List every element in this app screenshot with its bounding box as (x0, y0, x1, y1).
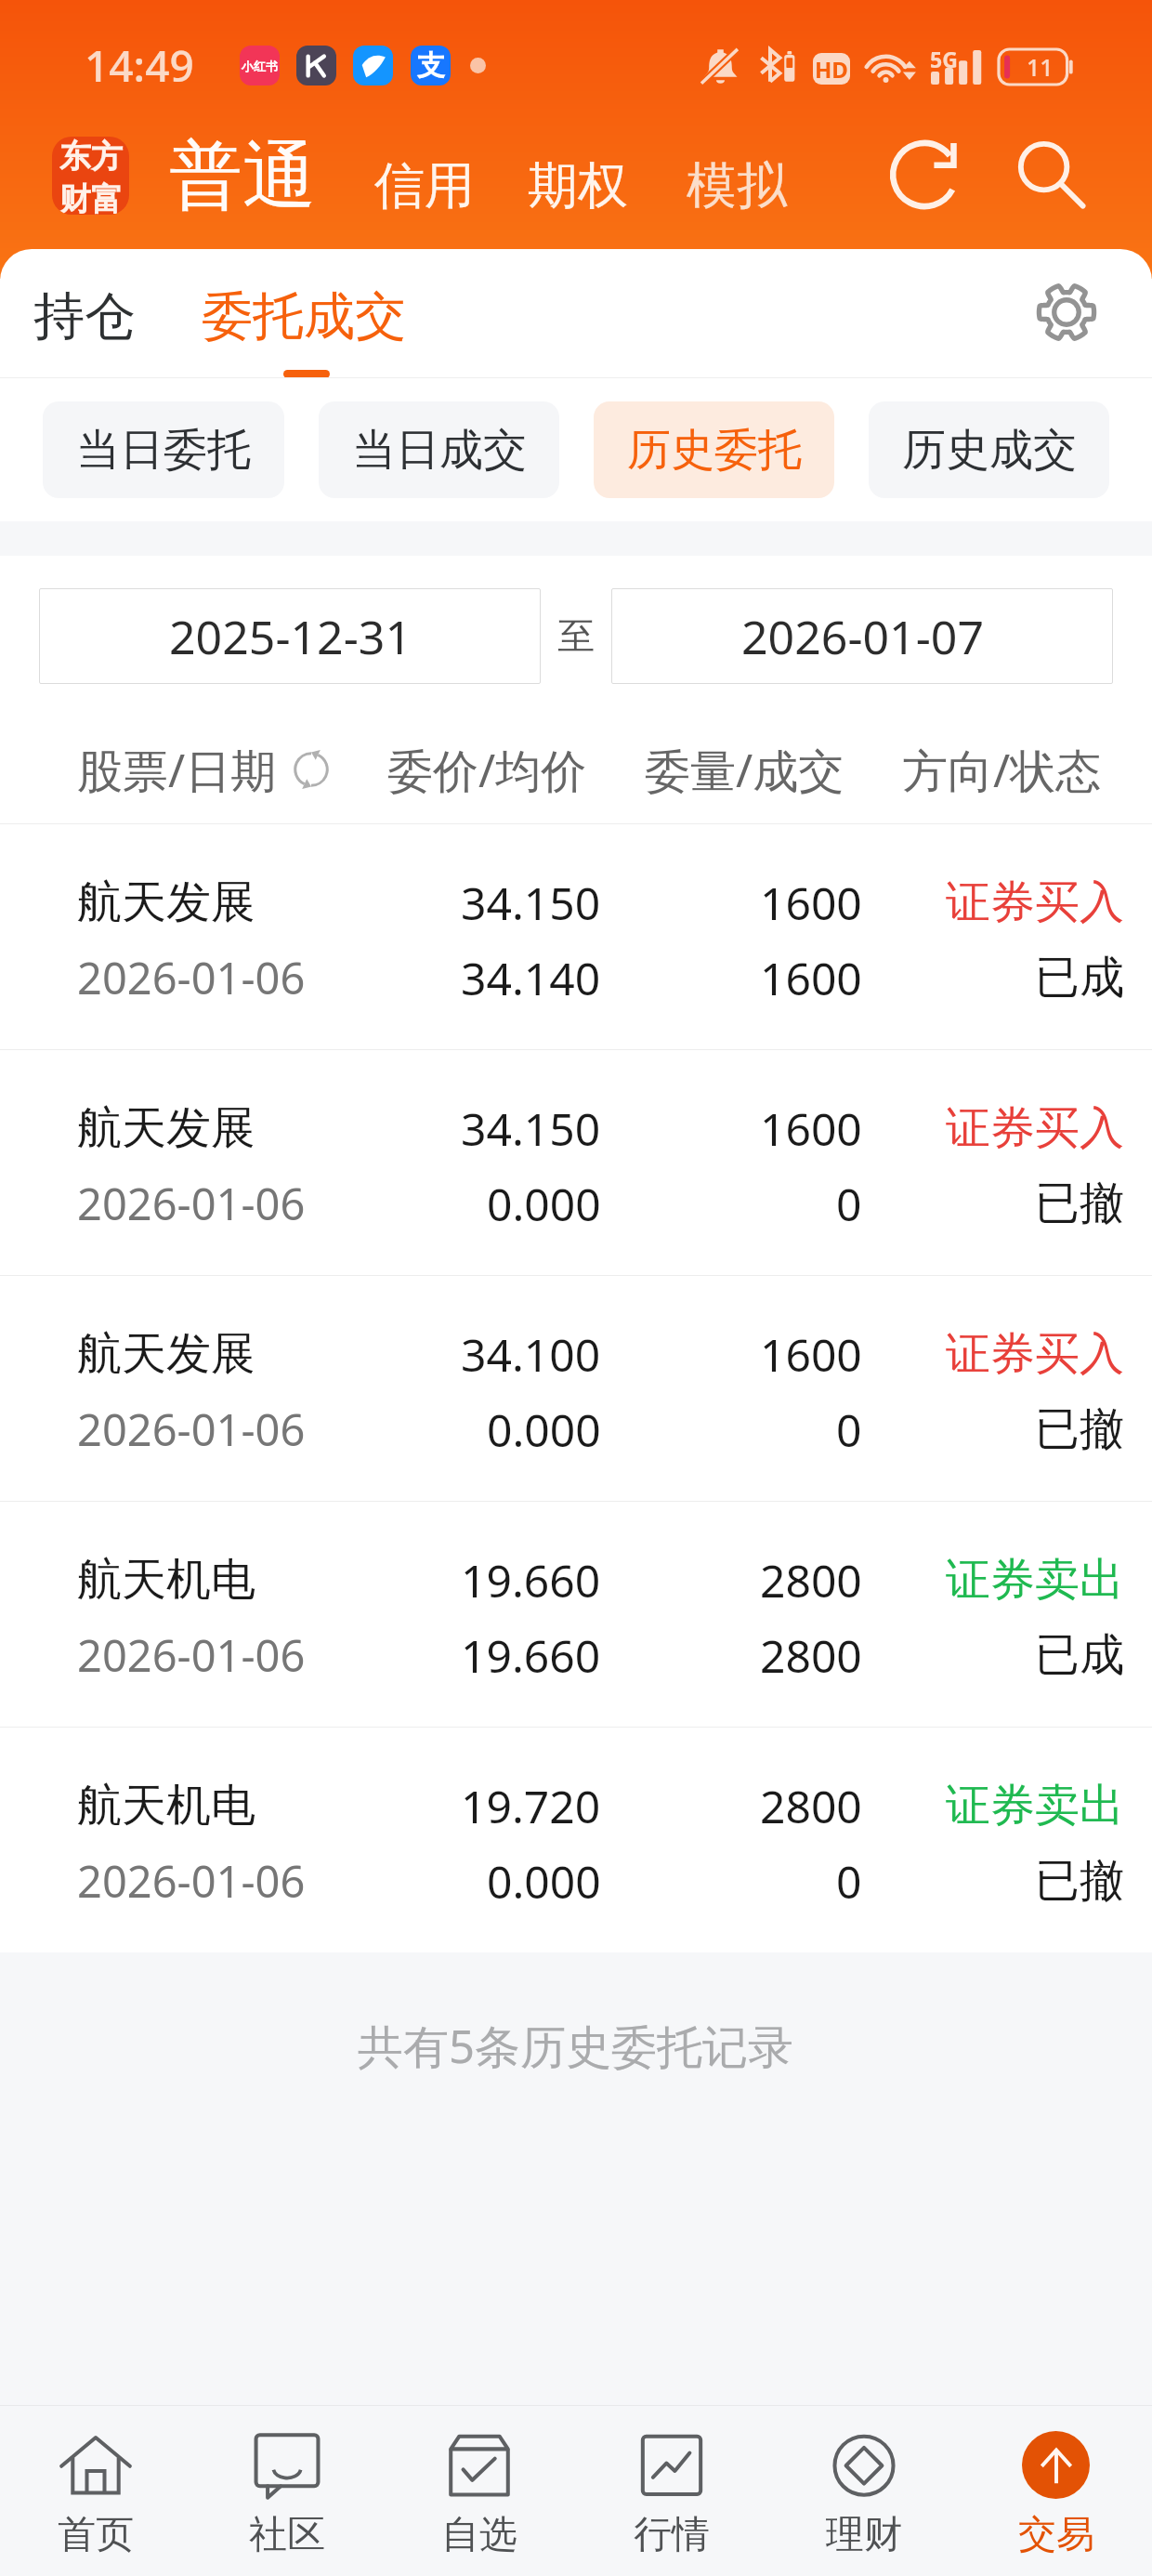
staticText: 19.660 (461, 1550, 601, 1610)
button[interactable]: 历史成交 (869, 401, 1109, 498)
button[interactable]: 航天机电 (0, 1502, 1152, 1727)
staticText: 至 (557, 612, 595, 659)
staticText: 持仓 (33, 284, 136, 348)
staticText: 证券卖出 (946, 1552, 1124, 1608)
staticText: 已撤 (1035, 1401, 1124, 1457)
staticText: 已成 (1035, 950, 1124, 1005)
staticText: 0 (836, 1851, 862, 1911)
staticText: 航天机电 (77, 1778, 255, 1833)
button[interactable]: 社区 (191, 2406, 383, 2576)
staticText: 历史委托 (627, 423, 802, 478)
staticText: 航天发展 (77, 874, 255, 930)
staticText: 14:49 (85, 36, 194, 95)
staticText: 34.140 (461, 948, 601, 1007)
staticText: 信用 (374, 154, 475, 217)
staticText: 航天发展 (77, 1326, 255, 1382)
staticText: 委托成交 (202, 284, 406, 348)
staticText: 支 (417, 48, 445, 84)
staticText: 共有5条历史委托记录 (358, 2015, 794, 2077)
staticText: 当日成交 (352, 423, 527, 478)
staticText: 委价/均价 (387, 739, 587, 801)
staticText: 已撤 (1035, 1853, 1124, 1909)
button[interactable]: 航天发展 (0, 824, 1152, 1049)
staticText: 0 (836, 1174, 862, 1233)
button[interactable]: 普通 (169, 130, 316, 223)
button[interactable]: Refresh (886, 132, 972, 217)
staticText: 2026-01-06 (77, 1174, 306, 1233)
button[interactable]: 航天发展 (0, 1050, 1152, 1275)
staticText: 34.150 (461, 873, 601, 932)
button[interactable]: 历史委托 (594, 401, 834, 498)
staticText: 19.660 (461, 1625, 601, 1685)
staticText: 证券买入 (946, 874, 1124, 930)
staticText: 方向/状态 (902, 739, 1102, 801)
staticText: 理财 (826, 2511, 902, 2559)
staticText: 股票/日期 (77, 739, 277, 801)
staticText: 1600 (760, 1098, 862, 1158)
button[interactable]: 当日成交 (319, 401, 559, 498)
button[interactable]: 持仓 (33, 284, 136, 348)
staticText: 19.720 (461, 1776, 601, 1835)
staticText: 历史成交 (902, 423, 1077, 478)
button[interactable]: 模拟 (687, 154, 787, 217)
staticText: HD (815, 54, 848, 85)
staticText: 财富 (59, 179, 123, 215)
staticText: 行情 (634, 2511, 710, 2559)
staticText: 11 (1027, 51, 1054, 83)
staticText: 2800 (760, 1550, 862, 1610)
staticText: 模拟 (687, 154, 787, 217)
button[interactable]: East Money (52, 137, 129, 215)
staticText: 1600 (760, 948, 862, 1007)
button[interactable]: Search (1009, 132, 1094, 217)
staticText: 东方 (59, 137, 123, 177)
button[interactable]: 航天发展 (0, 1276, 1152, 1501)
staticText: 2800 (760, 1776, 862, 1835)
staticText: 自选 (441, 2511, 517, 2559)
staticText: 5G (930, 45, 958, 73)
staticText: 证券买入 (946, 1326, 1124, 1382)
staticText: 2800 (760, 1625, 862, 1685)
staticText: 34.100 (461, 1324, 601, 1384)
staticText: 1600 (760, 1324, 862, 1384)
staticText: 委量/成交 (645, 739, 844, 801)
staticText: 0.000 (487, 1851, 601, 1911)
staticText: 已撤 (1035, 1176, 1124, 1231)
staticText: 航天发展 (77, 1100, 255, 1156)
staticText: 当日委托 (76, 423, 251, 478)
staticText: 2026-01-06 (77, 948, 306, 1007)
staticText: 期权 (528, 154, 628, 217)
staticText: 1600 (760, 873, 862, 932)
staticText: 2026-01-06 (77, 1625, 306, 1685)
button[interactable]: 自选 (383, 2406, 575, 2576)
staticText: 航天机电 (77, 1552, 255, 1608)
button[interactable]: 理财 (767, 2406, 960, 2576)
staticText: 0 (836, 1400, 862, 1459)
staticText: 证券卖出 (946, 1778, 1124, 1833)
staticText: 小红书 (242, 59, 278, 73)
staticText: 2026-01-06 (77, 1851, 306, 1911)
staticText: 0.000 (487, 1174, 601, 1233)
staticText: 已成 (1035, 1627, 1124, 1683)
button[interactable]: 信用 (374, 154, 475, 217)
staticText: 2025-12-31 (169, 605, 412, 668)
button[interactable]: 行情 (575, 2406, 767, 2576)
staticText: 首页 (58, 2511, 134, 2559)
staticText: 34.150 (461, 1098, 601, 1158)
staticText: 交易 (1018, 2511, 1094, 2559)
button[interactable]: 2026-01-07 (611, 588, 1113, 684)
button[interactable]: Settings (1024, 269, 1109, 355)
button[interactable]: 委托成交 (202, 284, 406, 348)
button[interactable]: 交易 (960, 2406, 1152, 2576)
staticText: 2026-01-07 (741, 605, 984, 668)
staticText: 0.000 (487, 1400, 601, 1459)
button[interactable]: 当日委托 (43, 401, 284, 498)
staticText: 普通 (169, 130, 316, 223)
button[interactable]: 首页 (0, 2406, 191, 2576)
button[interactable]: 航天机电 (0, 1728, 1152, 1952)
button[interactable]: 期权 (528, 154, 628, 217)
staticText: 2026-01-06 (77, 1400, 306, 1459)
button[interactable]: 2025-12-31 (39, 588, 541, 684)
staticText: 社区 (249, 2511, 325, 2559)
staticText: 证券买入 (946, 1100, 1124, 1156)
